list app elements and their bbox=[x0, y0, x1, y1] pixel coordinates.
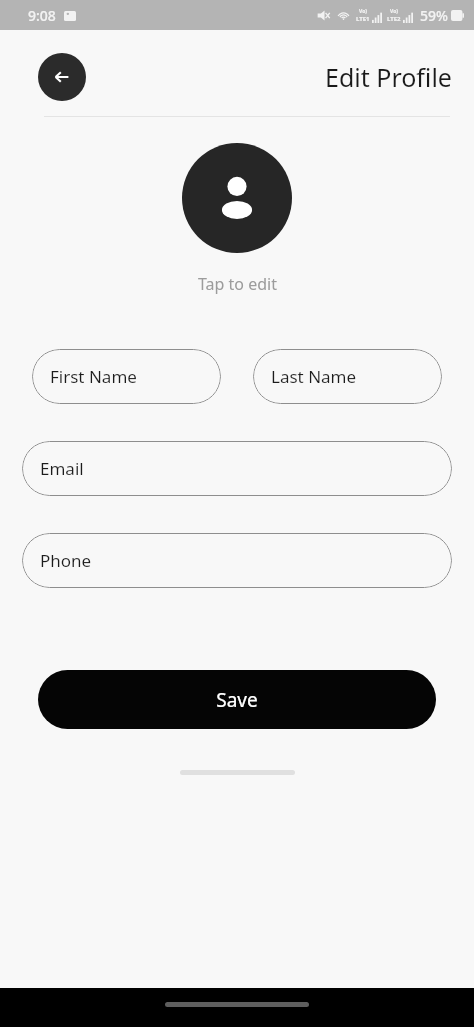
button[interactable]: Back bbox=[38, 53, 86, 101]
staticText: First Name bbox=[50, 365, 137, 388]
staticText: Vo) bbox=[359, 8, 367, 15]
staticText: LTE1 bbox=[356, 15, 370, 23]
button[interactable]: Last Name bbox=[253, 349, 442, 404]
staticText: 59% bbox=[420, 6, 448, 25]
other: Profile photo, tap to edit bbox=[182, 143, 292, 253]
staticText: Tap to edit bbox=[198, 273, 277, 295]
staticText: Last Name bbox=[271, 365, 357, 388]
button[interactable]: Profile photo, tap to edit bbox=[0, 143, 474, 295]
staticText: Vo) bbox=[390, 8, 398, 15]
staticText: Save bbox=[216, 687, 258, 713]
staticText: Phone bbox=[40, 549, 92, 572]
staticText: LTE2 bbox=[387, 15, 401, 23]
button[interactable]: Save bbox=[38, 670, 436, 729]
button[interactable]: Phone bbox=[22, 533, 452, 588]
staticText: Email bbox=[40, 457, 84, 480]
staticText: Edit Profile bbox=[325, 60, 452, 94]
button[interactable]: First Name bbox=[32, 349, 221, 404]
button[interactable]: Email bbox=[22, 441, 452, 496]
staticText: 9:08 bbox=[28, 6, 56, 25]
